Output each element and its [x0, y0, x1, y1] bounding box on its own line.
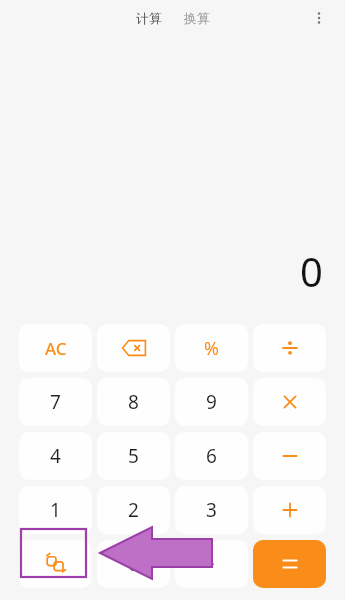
- button[interactable]: AC: [19, 324, 92, 372]
- staticText: AC: [45, 337, 67, 360]
- button[interactable]: Multiply: [253, 378, 326, 426]
- staticText: %: [204, 336, 219, 361]
- staticText: 3: [206, 497, 217, 523]
- staticText: 0: [300, 244, 323, 298]
- button[interactable]: Equals: [253, 540, 326, 588]
- staticText: 7: [50, 389, 61, 415]
- button[interactable]: 计算: [130, 6, 168, 30]
- button[interactable]: 0: [97, 540, 170, 588]
- button[interactable]: Backspace: [97, 324, 170, 372]
- button[interactable]: Divide: [253, 324, 326, 372]
- button[interactable]: 5: [97, 432, 170, 480]
- button[interactable]: 6: [175, 432, 248, 480]
- button[interactable]: Decimal point: [175, 540, 248, 588]
- button[interactable]: Add: [253, 486, 326, 534]
- button[interactable]: 3: [175, 486, 248, 534]
- staticText: 4: [50, 443, 61, 469]
- button[interactable]: More options: [305, 4, 333, 32]
- button[interactable]: Subtract: [253, 432, 326, 480]
- staticText: 1: [50, 497, 61, 523]
- staticText: 0: [128, 551, 139, 577]
- staticText: 2: [128, 497, 139, 523]
- staticText: 8: [128, 389, 139, 415]
- button[interactable]: 1: [19, 486, 92, 534]
- staticText: 计算: [136, 10, 162, 26]
- button[interactable]: 7: [19, 378, 92, 426]
- button[interactable]: 9: [175, 378, 248, 426]
- staticText: 9: [206, 389, 217, 415]
- button[interactable]: %: [175, 324, 248, 372]
- button[interactable]: 换算: [178, 6, 216, 30]
- staticText: 6: [206, 443, 217, 469]
- staticText: 换算: [184, 10, 210, 26]
- staticText: 5: [128, 443, 139, 469]
- button[interactable]: Scientific mode: [19, 540, 92, 588]
- button[interactable]: 2: [97, 486, 170, 534]
- button[interactable]: 4: [19, 432, 92, 480]
- button[interactable]: 8: [97, 378, 170, 426]
